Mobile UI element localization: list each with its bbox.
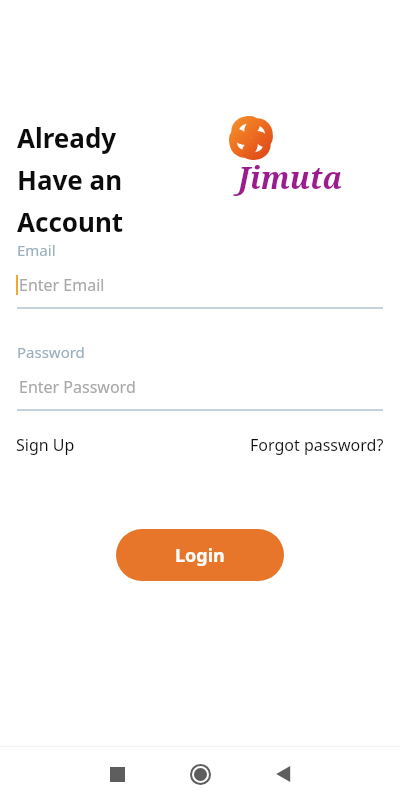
button[interactable]: Recent apps: [97, 754, 137, 794]
staticText: Login: [175, 543, 225, 568]
staticText: Already: [17, 120, 117, 155]
button[interactable]: Back: [263, 754, 303, 794]
button[interactable]: Forgot password?: [250, 430, 384, 460]
button[interactable]: Home: [180, 754, 220, 794]
button[interactable]: Login: [116, 529, 284, 581]
staticText: Have an: [17, 162, 123, 197]
button[interactable]: Sign Up: [16, 430, 75, 460]
staticText: Jimuta: [238, 157, 343, 198]
staticText: Sign Up: [16, 434, 75, 456]
staticText: Enter Password: [19, 376, 136, 398]
staticText: Forgot password?: [250, 434, 384, 456]
staticText: Password: [17, 342, 85, 362]
button[interactable]: Password: [0, 342, 400, 411]
staticText: Account: [17, 204, 124, 239]
staticText: Email: [17, 240, 56, 260]
button[interactable]: Email: [0, 240, 400, 309]
staticText: Enter Email: [19, 274, 105, 296]
